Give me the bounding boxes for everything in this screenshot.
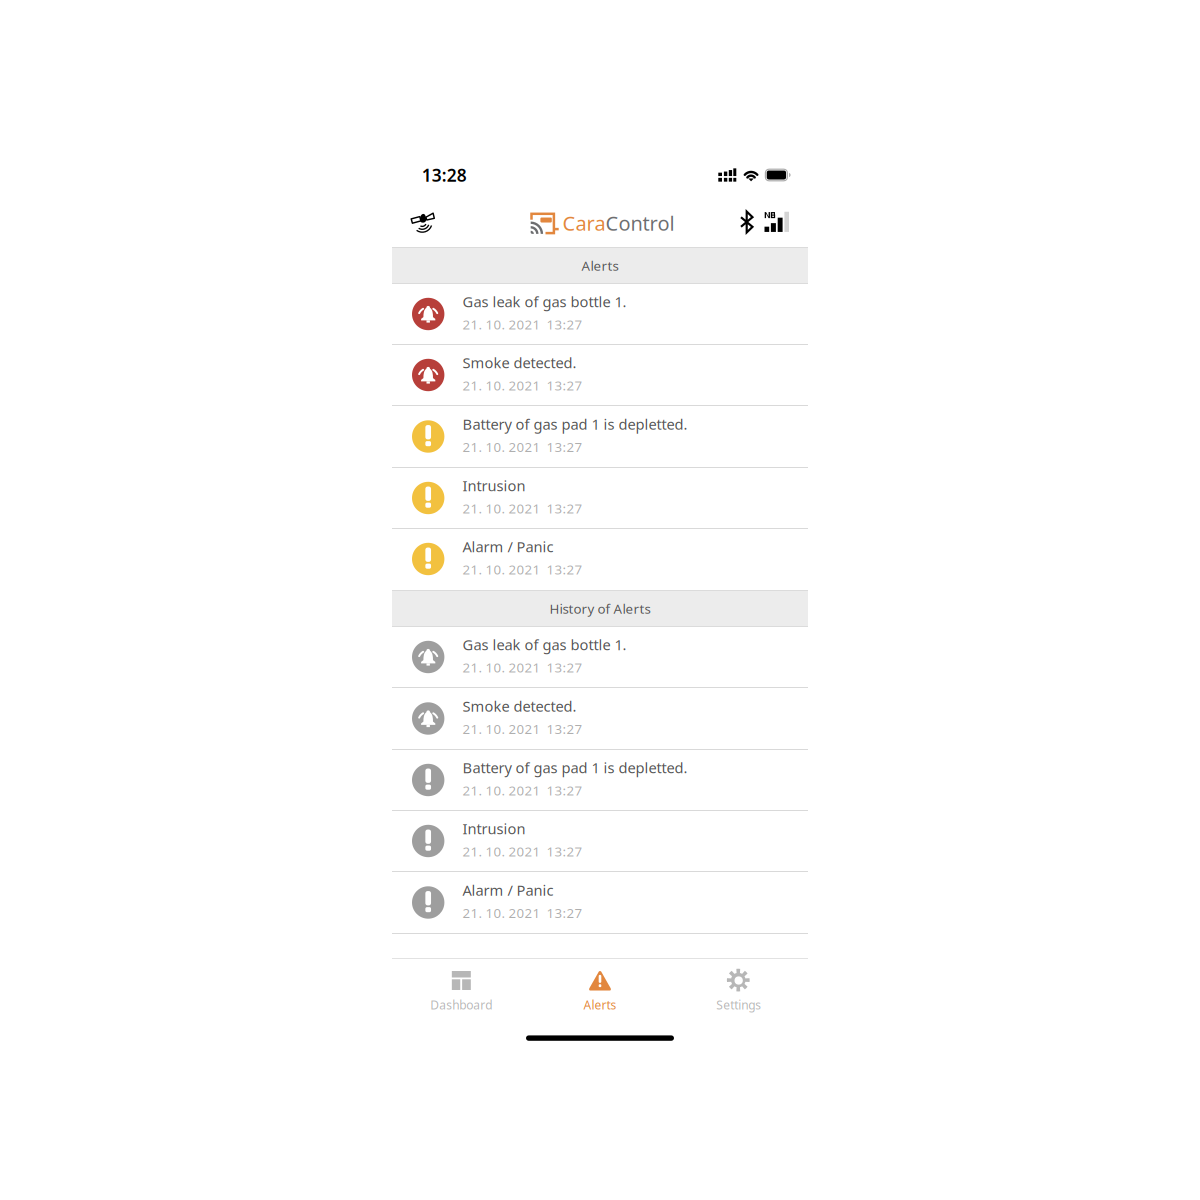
staticText: Cara	[562, 210, 605, 236]
staticText: Alerts	[581, 257, 618, 274]
button[interactable]: GPS status	[392, 200, 447, 244]
staticText: Alarm / Panic	[462, 537, 553, 556]
button[interactable]: Intrusion	[392, 811, 808, 872]
staticText: 21. 10. 2021 13:27	[462, 560, 582, 578]
button[interactable]: Battery of gas pad 1 is depletted.	[392, 750, 808, 811]
staticText: Smoke detected.	[462, 353, 576, 372]
staticText: Intrusion	[462, 819, 525, 838]
button[interactable]: Gas leak of gas bottle 1.	[392, 284, 808, 345]
staticText: Control	[605, 210, 674, 236]
button[interactable]: Gas leak of gas bottle 1.	[392, 627, 808, 688]
button[interactable]: Intrusion	[392, 468, 808, 529]
staticText: History of Alerts	[549, 600, 650, 617]
staticText: 21. 10. 2021 13:27	[462, 904, 582, 922]
button[interactable]: Network status	[753, 206, 808, 238]
button[interactable]: Alerts	[531, 959, 669, 1015]
staticText: 21. 10. 2021 13:27	[462, 781, 582, 799]
staticText: Alerts	[583, 997, 616, 1013]
staticText: 21. 10. 2021 13:27	[462, 842, 582, 860]
staticText: 21. 10. 2021 13:27	[462, 720, 582, 738]
staticText: Settings	[716, 997, 761, 1013]
staticText: Battery of gas pad 1 is depletted.	[462, 414, 687, 434]
staticText: 21. 10. 2021 13:27	[462, 315, 582, 333]
button[interactable]: Bluetooth status	[740, 205, 753, 239]
staticText: 21. 10. 2021 13:27	[462, 658, 582, 676]
staticText: 21. 10. 2021 13:27	[462, 376, 582, 394]
button[interactable]: Settings	[669, 959, 808, 1015]
staticText: Alarm / Panic	[462, 880, 553, 900]
staticText: Smoke detected.	[462, 696, 576, 716]
button[interactable]: Smoke detected.	[392, 688, 808, 750]
staticText: Gas leak of gas bottle 1.	[462, 292, 626, 311]
button[interactable]: Battery of gas pad 1 is depletted.	[392, 406, 808, 468]
staticText: 21. 10. 2021 13:27	[462, 499, 582, 517]
button[interactable]: Dashboard	[392, 959, 531, 1015]
staticText: 21. 10. 2021 13:27	[462, 438, 582, 456]
button[interactable]: Alarm / Panic	[392, 529, 808, 590]
button[interactable]: Alarm / Panic	[392, 872, 808, 934]
staticText: Battery of gas pad 1 is depletted.	[462, 758, 687, 777]
staticText: Intrusion	[462, 476, 525, 495]
button[interactable]: Smoke detected.	[392, 345, 808, 406]
staticText: 13:28	[422, 163, 467, 186]
staticText: Dashboard	[430, 997, 492, 1013]
staticText: Gas leak of gas bottle 1.	[462, 635, 626, 654]
